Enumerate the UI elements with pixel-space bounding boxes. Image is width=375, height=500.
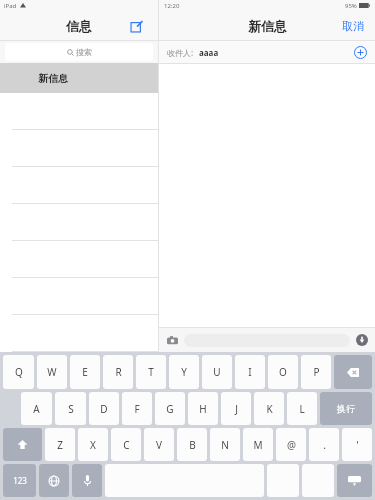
button[interactable]: @ bbox=[276, 428, 306, 461]
button[interactable]: O bbox=[268, 355, 298, 389]
staticText: P bbox=[313, 365, 320, 379]
button[interactable]: Hide keyboard bbox=[337, 464, 372, 497]
staticText: Q bbox=[15, 365, 23, 379]
button[interactable]: Next keyboard bbox=[39, 464, 69, 497]
button[interactable]: ' bbox=[342, 428, 372, 461]
button[interactable]: Shift bbox=[3, 428, 42, 461]
staticText: W bbox=[47, 365, 57, 379]
staticText: @ bbox=[287, 438, 296, 452]
button[interactable]: R bbox=[103, 355, 133, 389]
staticText: 新信息 bbox=[38, 72, 68, 85]
button[interactable]: . bbox=[309, 428, 339, 461]
button[interactable]: Z bbox=[45, 428, 75, 461]
staticText: aaaa bbox=[199, 47, 219, 58]
button[interactable]: Q bbox=[3, 355, 34, 389]
staticText: Y bbox=[181, 365, 187, 379]
button[interactable]: L bbox=[287, 392, 317, 425]
staticText: ' bbox=[356, 438, 359, 452]
staticText: B bbox=[189, 438, 196, 452]
staticText: J bbox=[235, 402, 238, 416]
button[interactable]: H bbox=[188, 392, 218, 425]
staticText: iPad bbox=[4, 2, 17, 10]
staticText: 123 bbox=[13, 475, 27, 486]
staticText: N bbox=[221, 438, 229, 452]
button[interactable]: P bbox=[301, 355, 331, 389]
staticText: V bbox=[156, 438, 162, 452]
button[interactable]: M bbox=[243, 428, 273, 461]
button[interactable]: 搜索 bbox=[5, 43, 153, 61]
button[interactable]: N bbox=[210, 428, 240, 461]
button[interactable]: Y bbox=[169, 355, 199, 389]
staticText: 信息 bbox=[66, 18, 92, 34]
button[interactable]: Dictation bbox=[72, 464, 102, 497]
button[interactable] bbox=[0, 278, 158, 315]
staticText: 换行 bbox=[337, 403, 355, 414]
staticText: Z bbox=[57, 438, 63, 452]
staticText: O bbox=[279, 365, 287, 379]
button[interactable]: D bbox=[89, 392, 119, 425]
staticText: C bbox=[123, 438, 130, 452]
button[interactable]: 换行 bbox=[320, 392, 372, 425]
staticText: F bbox=[134, 402, 140, 416]
button[interactable] bbox=[0, 315, 158, 352]
staticText: R bbox=[115, 365, 122, 379]
staticText: 95% bbox=[345, 2, 357, 10]
button[interactable]: V bbox=[144, 428, 174, 461]
button[interactable]: B bbox=[177, 428, 207, 461]
button[interactable] bbox=[0, 93, 158, 130]
button[interactable] bbox=[0, 204, 158, 241]
button[interactable]: 123 bbox=[3, 464, 36, 497]
staticText: E bbox=[82, 365, 88, 379]
button[interactable]: 收件人: bbox=[167, 41, 367, 63]
button[interactable]: U bbox=[202, 355, 232, 389]
button[interactable]: C bbox=[111, 428, 141, 461]
button[interactable] bbox=[0, 241, 158, 278]
staticText: T bbox=[148, 365, 154, 379]
staticText: U bbox=[213, 365, 221, 379]
button[interactable] bbox=[0, 130, 158, 167]
button[interactable]: E bbox=[70, 355, 100, 389]
staticText: . bbox=[323, 438, 326, 452]
staticText: A bbox=[33, 402, 40, 416]
button[interactable] bbox=[0, 167, 158, 204]
button[interactable]: 取消 bbox=[339, 15, 367, 37]
staticText: G bbox=[166, 402, 174, 416]
button[interactable]: T bbox=[136, 355, 166, 389]
staticText: 新信息 bbox=[248, 18, 287, 34]
button[interactable]: S bbox=[55, 392, 86, 425]
staticText: I bbox=[248, 365, 252, 379]
staticText: X bbox=[90, 438, 96, 452]
staticText: 搜索 bbox=[76, 47, 92, 57]
staticText: D bbox=[100, 402, 108, 416]
staticText: 取消 bbox=[342, 19, 364, 33]
staticText: 收件人: bbox=[167, 47, 194, 58]
button[interactable]: X bbox=[78, 428, 108, 461]
staticText: S bbox=[68, 402, 74, 416]
button[interactable]: Camera bbox=[165, 333, 179, 347]
button[interactable]: F bbox=[122, 392, 152, 425]
staticText: 12:20 bbox=[164, 2, 180, 10]
button[interactable]: 新信息 bbox=[0, 63, 158, 93]
button[interactable]: I bbox=[235, 355, 265, 389]
button[interactable]: K bbox=[254, 392, 284, 425]
button[interactable]: New message bbox=[126, 16, 146, 36]
button[interactable]: Add contact bbox=[354, 46, 367, 59]
button[interactable]: G bbox=[155, 392, 185, 425]
button[interactable]: Backspace bbox=[334, 355, 372, 389]
staticText: H bbox=[199, 402, 207, 416]
button[interactable]: J bbox=[221, 392, 251, 425]
button[interactable]: Send bbox=[355, 333, 369, 347]
staticText: L bbox=[299, 402, 305, 416]
staticText: K bbox=[266, 402, 273, 416]
button[interactable]: A bbox=[21, 392, 52, 425]
button[interactable]: W bbox=[37, 355, 67, 389]
staticText: M bbox=[253, 438, 263, 452]
